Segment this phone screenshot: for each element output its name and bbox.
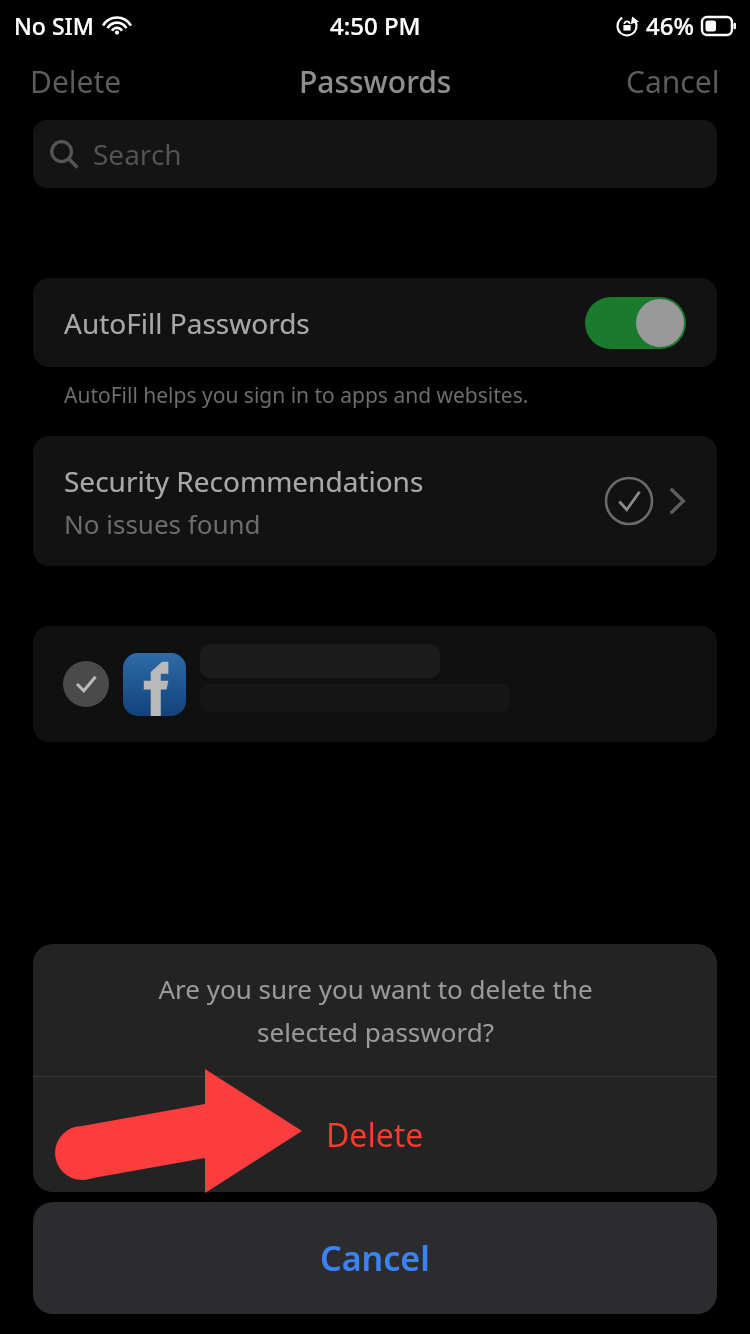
staticText: AutoFill Passwords [64,304,310,342]
staticText: No issues found [64,506,261,541]
staticText: Delete [326,1113,424,1157]
button[interactable] [33,626,717,742]
button[interactable]: Cancel [596,53,750,110]
staticText: Are you sure you want to delete the sele… [158,971,593,1049]
staticText: Security Recommendations [64,462,424,500]
button[interactable]: AutoFill Passwords [33,278,717,367]
staticText: Delete [30,61,122,102]
button[interactable]: AutoFill Passwords toggle [585,297,686,349]
staticText: Search [93,135,182,173]
button[interactable]: Search [33,120,717,188]
button[interactable]: Security Recommendations [33,436,717,566]
button[interactable]: Cancel [33,1202,717,1314]
staticText: No SIM [14,10,94,41]
button[interactable]: Delete [33,1077,717,1192]
button[interactable]: Delete [0,53,152,110]
staticText: Cancel [626,61,720,102]
staticText: 4:50 PM [330,9,421,42]
staticText: Cancel [320,1235,430,1281]
staticText: AutoFill helps you sign in to apps and w… [64,381,529,410]
staticText: 46% [646,9,694,42]
staticText: Passwords [299,61,452,102]
